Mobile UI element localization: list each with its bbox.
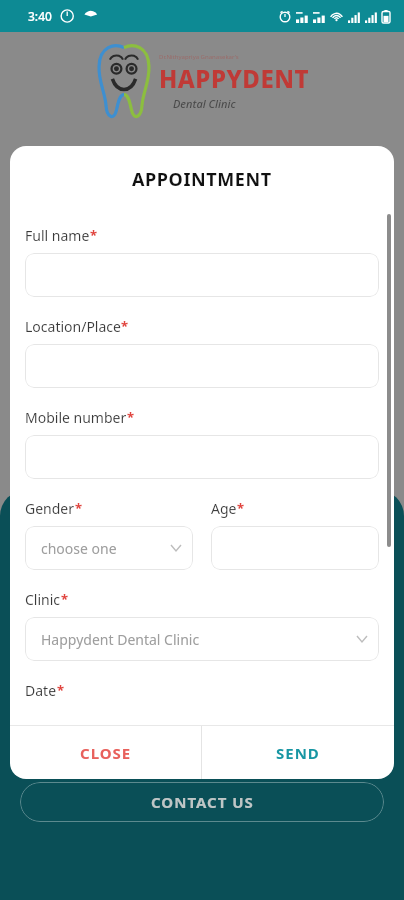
- staticText: Age: [211, 499, 237, 518]
- staticText: HAPPYDENT: [159, 62, 310, 95]
- staticText: Dr.Nithyapriya Gnanasekar's: [159, 53, 239, 61]
- staticText: 3:40: [28, 8, 52, 24]
- staticText: Clinic: [25, 590, 61, 609]
- staticText: *: [75, 499, 83, 517]
- staticText: *: [121, 317, 129, 335]
- staticText: choose one: [41, 539, 117, 558]
- button[interactable]: [25, 344, 379, 388]
- button[interactable]: SEND: [202, 726, 394, 779]
- staticText: Full name: [25, 226, 90, 245]
- staticText: Date: [25, 681, 57, 700]
- button[interactable]: Happydent Dental Clinic: [25, 617, 379, 661]
- button[interactable]: [211, 526, 379, 570]
- staticText: SEND: [276, 743, 320, 763]
- button[interactable]: [25, 435, 379, 479]
- button[interactable]: [25, 253, 379, 297]
- staticText: *: [61, 590, 69, 608]
- staticText: Gender: [25, 499, 75, 518]
- button[interactable]: CLOSE: [10, 726, 201, 779]
- staticText: *: [90, 226, 98, 244]
- staticText: *: [57, 681, 65, 699]
- staticText: Location/Place: [25, 317, 121, 336]
- staticText: Happydent Dental Clinic: [41, 630, 200, 649]
- staticText: *: [237, 499, 245, 517]
- staticText: CONTACT US: [151, 792, 254, 812]
- staticText: *: [127, 408, 135, 426]
- button[interactable]: CONTACT US: [20, 782, 384, 822]
- staticText: Mobile number: [25, 408, 127, 427]
- staticText: APPOINTMENT: [132, 167, 272, 192]
- staticText: CLOSE: [80, 743, 132, 763]
- staticText: Dental Clinic: [173, 96, 236, 111]
- button[interactable]: choose one: [25, 526, 193, 570]
